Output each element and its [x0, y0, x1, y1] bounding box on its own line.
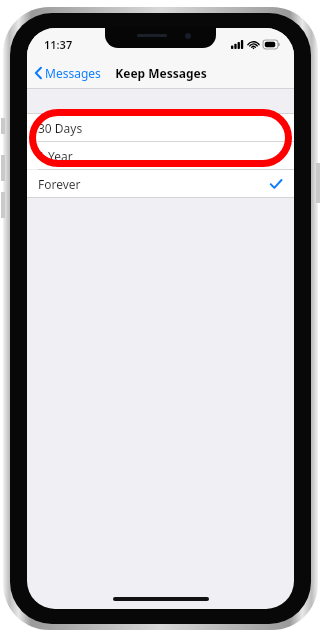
button[interactable]: Forever [27, 170, 294, 197]
staticText: Messages [45, 65, 101, 81]
staticText: 11:37 [44, 37, 73, 52]
staticText: Keep Messages [115, 65, 207, 81]
button[interactable]: 1 Year [27, 142, 294, 169]
staticText: 30 Days [38, 120, 83, 136]
staticText: 1 Year [38, 148, 73, 164]
button[interactable]: 30 Days [27, 114, 294, 141]
staticText: Forever [38, 176, 81, 192]
button[interactable]: Messages [27, 61, 109, 85]
